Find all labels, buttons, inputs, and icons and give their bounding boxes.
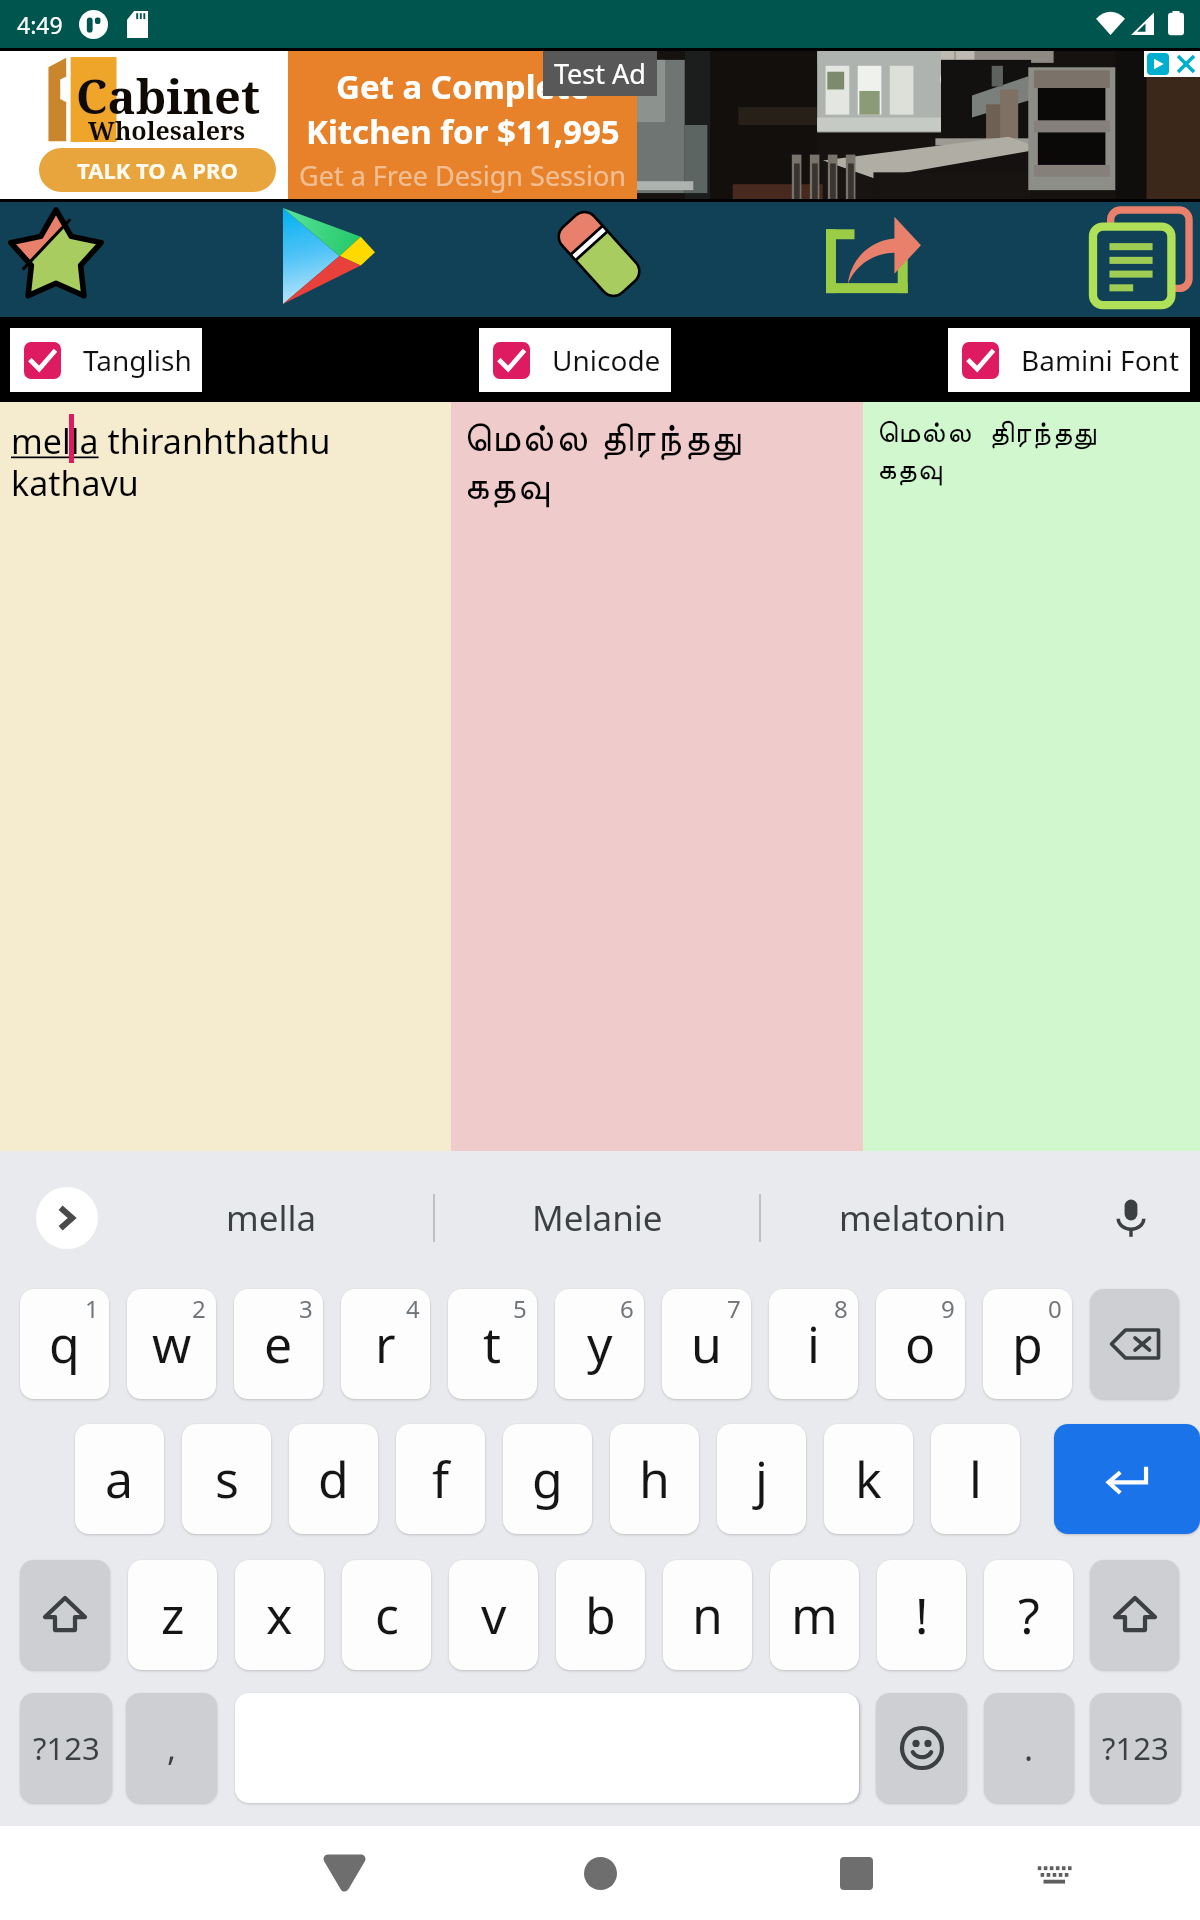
button[interactable]: e: [234, 1289, 323, 1399]
staticText: u: [691, 1310, 722, 1378]
staticText: மெல்ல திரந்தது கதவு: [464, 409, 743, 507]
button[interactable]: mella: [110, 1151, 433, 1285]
staticText: .: [1024, 1725, 1034, 1771]
button[interactable]: z: [128, 1560, 217, 1670]
button[interactable]: q: [20, 1289, 109, 1399]
staticText: 2: [192, 1292, 206, 1325]
button[interactable]: a: [75, 1424, 164, 1534]
button[interactable]: Backspace: [1090, 1289, 1179, 1399]
button[interactable]: Open Play Store: [232, 202, 464, 317]
button[interactable]: o: [876, 1289, 965, 1399]
button[interactable]: Copy: [928, 202, 1200, 317]
staticText: 7: [727, 1292, 741, 1325]
staticText: 8: [834, 1292, 848, 1325]
button[interactable]: f: [396, 1424, 485, 1534]
button[interactable]: i: [769, 1289, 858, 1399]
button[interactable]: More suggestions: [36, 1187, 98, 1249]
staticText: ?: [1018, 1581, 1040, 1649]
button[interactable]: Share: [696, 202, 928, 317]
staticText: melatonin: [839, 1194, 1007, 1242]
button[interactable]: y: [555, 1289, 644, 1399]
button[interactable]: Clear text: [464, 202, 696, 317]
button[interactable]: p: [983, 1289, 1072, 1399]
staticText: z: [161, 1581, 185, 1649]
staticText: ?123: [1102, 1727, 1169, 1769]
button[interactable]: Shift: [20, 1560, 110, 1670]
button[interactable]: m: [770, 1560, 859, 1670]
button[interactable]: Tanglish: [10, 328, 202, 392]
button[interactable]: ?123: [1090, 1693, 1181, 1803]
staticText: !: [915, 1581, 929, 1649]
staticText: b: [585, 1581, 616, 1649]
button[interactable]: Bamini Font: [948, 328, 1190, 392]
button[interactable]: s: [182, 1424, 271, 1534]
staticText: mella: [226, 1194, 317, 1242]
staticText: g: [532, 1445, 563, 1513]
staticText: Unicode: [552, 341, 661, 379]
button[interactable]: u: [662, 1289, 751, 1399]
button[interactable]: n: [663, 1560, 752, 1670]
staticText: k: [855, 1445, 882, 1513]
button[interactable]: Home: [558, 1831, 642, 1915]
button[interactable]: v: [449, 1560, 538, 1670]
button[interactable]: j: [717, 1424, 806, 1534]
staticText: Cabinet: [76, 64, 260, 128]
button[interactable]: ?123: [20, 1693, 112, 1803]
staticText: w: [152, 1310, 192, 1378]
button[interactable]: h: [610, 1424, 699, 1534]
button[interactable]: t: [448, 1289, 537, 1399]
button[interactable]: melatonin: [761, 1151, 1085, 1285]
button[interactable]: Unicode: [479, 328, 671, 392]
button[interactable]: r: [341, 1289, 430, 1399]
button[interactable]: Switch keyboard: [1013, 1831, 1097, 1915]
staticText: o: [905, 1310, 936, 1378]
staticText: Kitchen for $11,995: [306, 109, 620, 154]
staticText: Test Ad: [554, 55, 646, 92]
staticText: x: [266, 1581, 293, 1649]
button[interactable]: Voice input: [1104, 1191, 1158, 1245]
staticText: t: [483, 1310, 502, 1378]
button[interactable]: .: [984, 1693, 1074, 1803]
staticText: Wholesalers: [88, 113, 246, 147]
staticText: 3: [299, 1292, 313, 1325]
staticText: ,: [167, 1725, 177, 1771]
button[interactable]: Favourites: [0, 202, 232, 317]
staticText: Get a Free Design Session: [299, 157, 626, 194]
button[interactable]: Melanie: [435, 1151, 759, 1285]
staticText: 4:49: [17, 9, 63, 40]
button[interactable]: b: [556, 1560, 645, 1670]
button[interactable]: ,: [126, 1693, 217, 1803]
button[interactable]: g: [503, 1424, 592, 1534]
button[interactable]: x: [235, 1560, 324, 1670]
staticText: d: [318, 1445, 349, 1513]
button[interactable]: l: [931, 1424, 1020, 1534]
button[interactable]: Emoji: [876, 1693, 967, 1803]
staticText: j: [755, 1445, 768, 1513]
staticText: 6: [620, 1292, 634, 1325]
staticText: i: [807, 1310, 820, 1378]
button[interactable]: Back: [302, 1831, 386, 1915]
button[interactable]: w: [127, 1289, 216, 1399]
button[interactable]: c: [342, 1560, 431, 1670]
staticText: 1: [85, 1292, 99, 1325]
staticText: v: [481, 1581, 507, 1649]
staticText: 9: [941, 1292, 955, 1325]
button[interactable]: Shift: [1090, 1560, 1179, 1670]
staticText: r: [375, 1310, 396, 1378]
staticText: s: [215, 1445, 239, 1513]
staticText: c: [375, 1581, 399, 1649]
button[interactable]: ?: [984, 1560, 1073, 1670]
staticText: e: [264, 1310, 293, 1378]
staticText: q: [49, 1310, 80, 1378]
button[interactable]: d: [289, 1424, 378, 1534]
staticText: f: [432, 1445, 450, 1513]
staticText: TALK TO A PRO: [77, 155, 238, 185]
button[interactable]: !: [877, 1560, 966, 1670]
button[interactable]: k: [824, 1424, 913, 1534]
staticText: m: [791, 1581, 838, 1649]
staticText: மெல்ல திரந்தது கதவு: [877, 410, 1097, 485]
staticText: y: [587, 1310, 613, 1378]
button[interactable]: Enter: [1054, 1424, 1200, 1534]
button[interactable]: Recent apps: [814, 1831, 898, 1915]
